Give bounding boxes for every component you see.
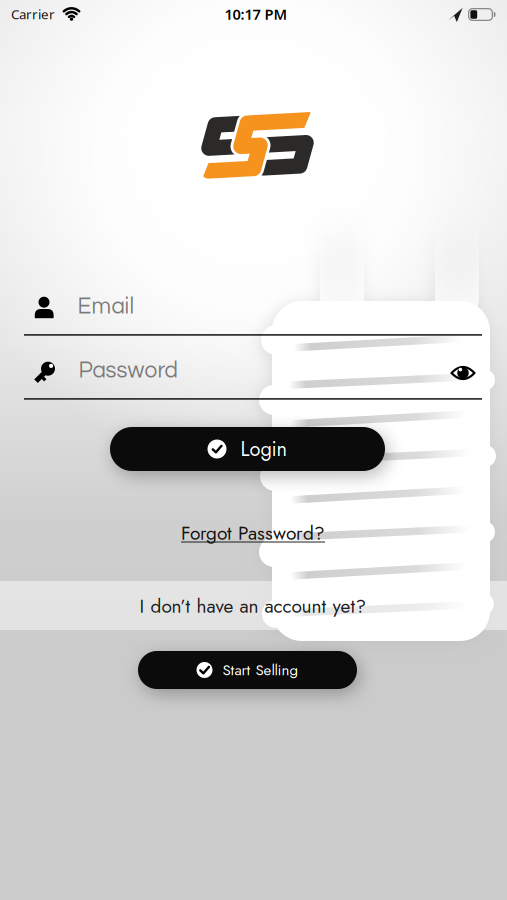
button[interactable]: Show password (450, 365, 476, 381)
button[interactable]: Login (110, 427, 385, 471)
button[interactable]: Email (24, 289, 482, 336)
staticText: I don’t have an account yet? (139, 592, 366, 620)
staticText: 10:17 PM (224, 4, 287, 24)
button[interactable]: Password (24, 353, 482, 400)
staticText: Start Selling (222, 659, 298, 681)
button[interactable]: Forgot Password? (181, 519, 325, 547)
staticText: Password (78, 359, 177, 382)
button[interactable]: Start Selling (138, 651, 357, 689)
staticText: Email (77, 295, 134, 318)
staticText: Carrier (11, 5, 55, 23)
staticText: Forgot Password? (181, 519, 325, 547)
staticText: Login (240, 434, 287, 463)
